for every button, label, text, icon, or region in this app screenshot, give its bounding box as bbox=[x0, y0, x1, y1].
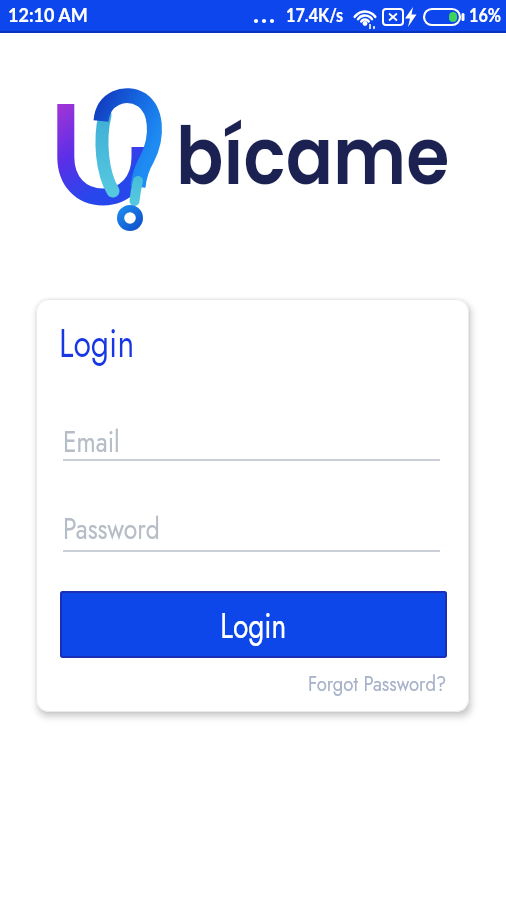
staticText: Password bbox=[63, 508, 160, 550]
staticText: Login bbox=[59, 314, 135, 372]
staticText: bícame bbox=[176, 100, 450, 212]
button[interactable]: Password bbox=[60, 500, 440, 552]
button[interactable]: Login bbox=[60, 591, 447, 658]
staticText: 16% bbox=[469, 4, 501, 26]
staticText: Forgot Password? bbox=[308, 669, 447, 699]
staticText: Email bbox=[63, 421, 120, 463]
staticText: 17.4K/s bbox=[286, 4, 344, 26]
staticText: 12:10 AM bbox=[8, 4, 88, 26]
button[interactable]: Forgot Password? bbox=[36, 669, 447, 699]
button[interactable]: Email bbox=[60, 409, 440, 461]
staticText: Login bbox=[220, 599, 287, 651]
